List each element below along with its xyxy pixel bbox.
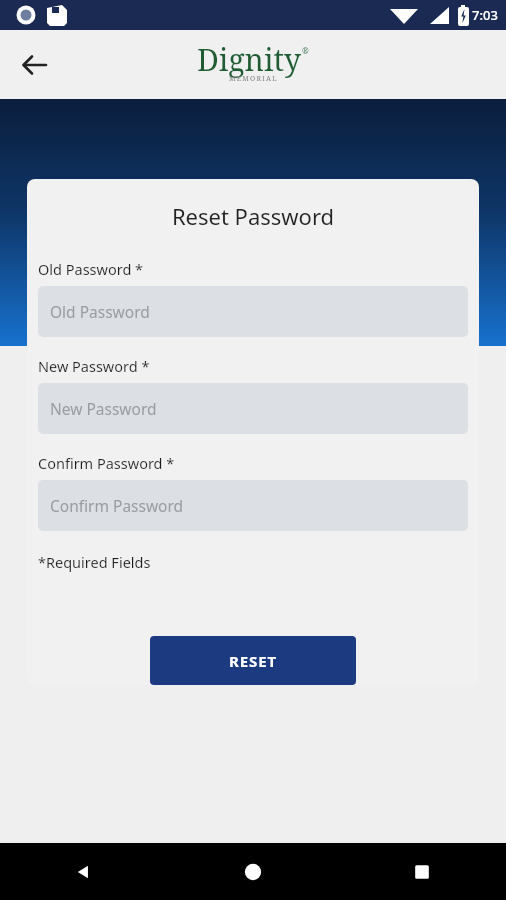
staticText: MEMORIAL bbox=[229, 74, 278, 84]
staticText: Old Password bbox=[50, 301, 150, 322]
button[interactable]: Back bbox=[14, 44, 56, 86]
staticText: Dignity bbox=[197, 39, 302, 80]
button[interactable]: Old Password bbox=[38, 286, 468, 337]
button[interactable]: RESET bbox=[150, 636, 356, 685]
button[interactable]: Recents bbox=[398, 848, 446, 896]
staticText: 7:03 bbox=[472, 6, 498, 24]
staticText: New Password * bbox=[38, 356, 150, 376]
staticText: New Password bbox=[50, 398, 157, 419]
staticText: Confirm Password * bbox=[38, 453, 175, 473]
button[interactable]: Confirm Password bbox=[38, 480, 468, 531]
staticText: Old Password * bbox=[38, 259, 144, 279]
staticText: Reset Password bbox=[38, 201, 468, 231]
staticText: *Required Fields bbox=[38, 552, 151, 572]
staticText: RESET bbox=[229, 651, 278, 671]
button[interactable]: New Password bbox=[38, 383, 468, 434]
button[interactable]: Home bbox=[229, 848, 277, 896]
staticText: Confirm Password bbox=[50, 495, 184, 516]
button[interactable]: Back bbox=[60, 848, 108, 896]
staticText: ® bbox=[302, 45, 309, 56]
